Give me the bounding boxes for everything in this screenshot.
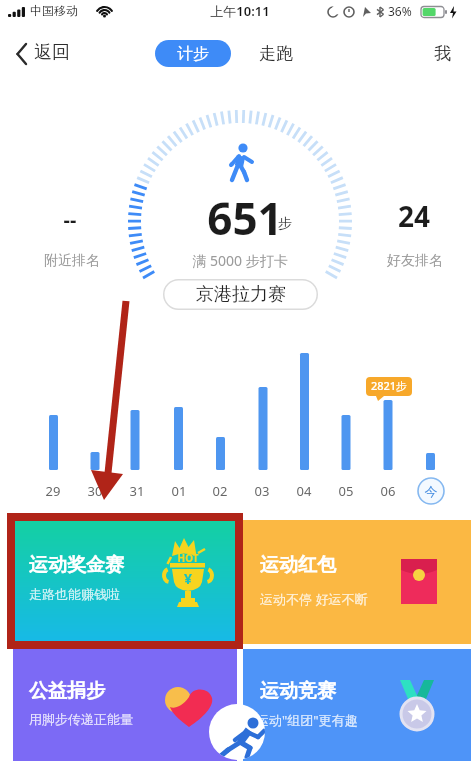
staticText: 返回: [34, 41, 94, 64]
staticText: HOT: [170, 551, 206, 565]
staticText: 03: [247, 482, 277, 500]
staticText: 中国移动: [30, 3, 100, 18]
button[interactable]: 公益捐步: [13, 649, 237, 761]
staticText: 运动"组团"更有趣: [256, 711, 416, 729]
button[interactable]: 我: [420, 40, 464, 67]
button[interactable]: [209, 704, 265, 760]
button[interactable]: 走跑: [248, 40, 304, 67]
staticText: 2821步: [367, 378, 411, 393]
staticText: 24: [374, 197, 454, 235]
button[interactable]: 运动红包: [243, 520, 471, 644]
staticText: 上午10:11: [190, 2, 290, 20]
staticText: 我: [434, 43, 451, 64]
staticText: 04: [289, 482, 319, 500]
button[interactable]: 京港拉力赛: [163, 279, 318, 310]
staticText: 651: [165, 188, 325, 248]
staticText: 京港拉力赛: [196, 283, 286, 306]
staticText: 运动奖金赛: [29, 553, 149, 577]
staticText: 36%: [388, 3, 428, 19]
staticText: 走路也能赚钱啦: [29, 586, 159, 602]
staticText: 运动不停 好运不断: [260, 590, 420, 608]
staticText: 运动竞赛: [260, 679, 360, 703]
staticText: 好友排名: [365, 252, 465, 270]
staticText: --: [30, 206, 110, 233]
staticText: 附近排名: [22, 252, 122, 270]
button[interactable]: 计步: [155, 40, 231, 67]
staticText: 31: [122, 482, 152, 500]
staticText: 06: [373, 482, 403, 500]
staticText: 30: [80, 482, 110, 500]
staticText: 步: [278, 215, 308, 233]
button[interactable]: 运动奖金赛: [13, 520, 237, 644]
staticText: 05: [331, 482, 361, 500]
button[interactable]: [418, 478, 445, 505]
staticText: 运动红包: [260, 553, 360, 577]
button[interactable]: 返回: [10, 38, 100, 70]
staticText: 用脚步传递正能量: [29, 711, 189, 727]
staticText: 满 5000 步打卡: [140, 251, 340, 270]
staticText: 计步: [177, 44, 209, 64]
staticText: 走跑: [259, 43, 293, 64]
staticText: 01: [164, 482, 194, 500]
staticText: 今: [416, 483, 446, 499]
button[interactable]: 运动竞赛: [243, 649, 471, 761]
staticText: 02: [205, 482, 235, 500]
staticText: ¥: [177, 569, 199, 588]
staticText: 公益捐步: [29, 679, 129, 703]
staticText: 29: [38, 482, 68, 500]
